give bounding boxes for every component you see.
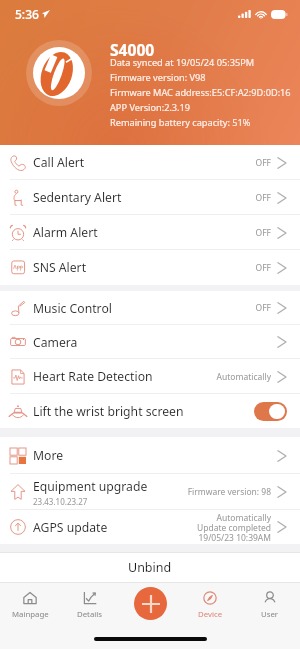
button[interactable]: Alarm Alert xyxy=(0,215,300,250)
staticText: Sedentary Alert xyxy=(33,189,122,206)
staticText: AGPS update xyxy=(33,519,108,536)
staticText: OFF xyxy=(255,192,271,204)
staticText: Automatically Update completed 19/05/23 … xyxy=(197,512,271,543)
button[interactable]: Unbind xyxy=(0,552,300,583)
button[interactable]: Details xyxy=(60,587,120,627)
button[interactable]: Device xyxy=(180,587,240,627)
staticText: Alarm Alert xyxy=(33,224,98,241)
button[interactable]: Music Control xyxy=(0,291,300,325)
button[interactable]: Lift the wrist bright screen xyxy=(0,394,300,428)
staticText: Remaining battery capacity: 51% xyxy=(110,116,251,129)
button[interactable]: Mainpage xyxy=(0,587,60,627)
button[interactable]: Call Alert xyxy=(0,145,300,180)
staticText: APP Version:2.3.19 xyxy=(110,101,191,114)
staticText: OFF xyxy=(255,157,271,169)
staticText: OFF xyxy=(255,302,271,314)
staticText: Music Control xyxy=(33,300,112,317)
button[interactable]: SNS Alert xyxy=(0,250,300,285)
staticText: Firmware version: 98 xyxy=(187,486,271,498)
staticText: Heart Rate Detection xyxy=(33,368,153,385)
staticText: Firmware version: V98 xyxy=(110,71,206,84)
staticText: OFF xyxy=(255,262,271,274)
staticText: Mainpage xyxy=(12,609,49,620)
button[interactable]: Lift the wrist bright screen toggle xyxy=(254,402,287,421)
staticText: OFF xyxy=(255,227,271,239)
button[interactable]: Heart Rate Detection xyxy=(0,359,300,394)
staticText: SNS Alert xyxy=(33,259,87,276)
button[interactable]: Sedentary Alert xyxy=(0,180,300,215)
staticText: Details xyxy=(77,609,103,620)
button[interactable]: Camera xyxy=(0,325,300,359)
staticText: Firmware MAC address:E5:CF:A2:9D:0D:16 xyxy=(110,86,291,99)
staticText: Equipment upgrade xyxy=(33,478,148,495)
staticText: Data synced at 19/05/24 05:35PM xyxy=(110,56,255,69)
staticText: S4000 xyxy=(110,39,155,60)
button[interactable]: AGPS update xyxy=(0,510,300,544)
staticText: Unbind xyxy=(128,559,172,576)
button[interactable]: Add xyxy=(134,587,167,620)
staticText: Automatically xyxy=(216,371,271,383)
button[interactable]: More xyxy=(0,437,300,474)
staticText: Call Alert xyxy=(33,154,85,171)
staticText: More xyxy=(33,447,64,464)
staticText: Camera xyxy=(33,334,78,351)
button[interactable]: User xyxy=(240,587,300,627)
button[interactable]: Equipment upgrade xyxy=(0,474,300,510)
staticText: Lift the wrist bright screen xyxy=(33,403,184,420)
staticText: 5:36 xyxy=(15,6,39,22)
staticText: 23.43.10.23.27 xyxy=(33,496,88,507)
staticText: Device xyxy=(198,609,223,620)
staticText: User xyxy=(261,609,279,620)
